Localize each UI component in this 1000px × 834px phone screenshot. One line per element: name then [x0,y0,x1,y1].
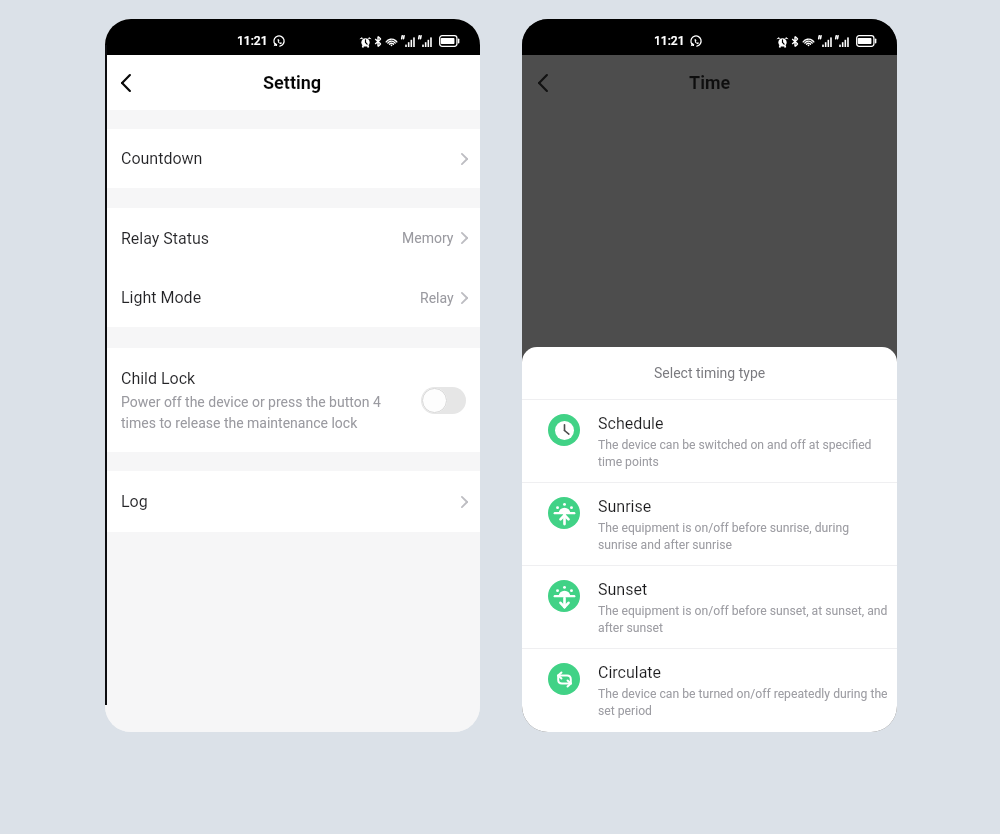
button[interactable]: Countdown [105,129,480,188]
staticText: Log [121,492,148,511]
staticText: Child Lock [121,369,196,388]
button[interactable]: Circulate [522,649,897,731]
staticText: Setting [263,72,322,93]
button[interactable]: Schedule [522,400,897,482]
staticText: Schedule [598,414,664,433]
button[interactable]: Sunset [522,566,897,648]
staticText: 11:21 [237,34,268,48]
staticText: Relay [420,290,454,306]
button[interactable]: Relay Status [105,208,480,268]
staticText: Power off the device or press the button… [121,394,392,431]
staticText: Light Mode [121,288,202,307]
staticText: Relay Status [121,229,210,248]
button[interactable]: Child lock toggle [421,387,466,414]
staticText: Countdown [121,149,203,168]
staticText: The device can be turned on/off repeated… [598,687,889,718]
staticText: The device can be switched on and off at… [598,438,889,469]
button[interactable]: Back [109,66,143,100]
staticText: Select timing type [654,365,766,381]
button[interactable]: Sunrise [522,483,897,565]
staticText: Sunrise [598,497,652,516]
staticText: Time [689,72,731,93]
staticText: Circulate [598,663,662,682]
staticText: 11:21 [654,34,685,48]
staticText: Memory [402,230,454,246]
staticText: The equipment is on/off before sunset, a… [598,604,889,635]
button[interactable]: Back [526,66,560,100]
button[interactable]: Log [105,471,480,532]
button[interactable]: Child Lock [105,348,480,452]
button[interactable]: Light Mode [105,268,480,327]
staticText: Sunset [598,580,648,599]
staticText: The equipment is on/off before sunrise, … [598,521,889,552]
